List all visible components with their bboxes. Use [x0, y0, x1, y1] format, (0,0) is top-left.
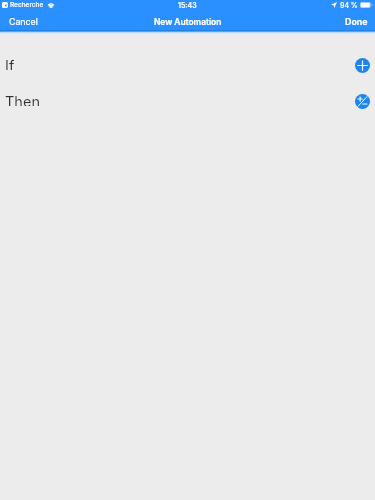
staticText: Done	[345, 16, 368, 27]
button[interactable]: Done	[336, 14, 375, 29]
button[interactable]: Add action	[355, 94, 370, 109]
staticText: If	[5, 57, 15, 70]
other: Wi-Fi	[47, 2, 55, 8]
staticText: 94 %	[340, 1, 358, 9]
staticText: Cancel	[9, 16, 38, 27]
staticText: New Automation	[154, 17, 222, 27]
staticText: Then	[5, 93, 40, 106]
button[interactable]: Add condition	[355, 58, 370, 73]
other: Location services active	[331, 2, 337, 8]
staticText: 15:43	[178, 1, 197, 9]
other: Battery 94 percent	[360, 2, 373, 8]
staticText: Recherche	[10, 1, 44, 9]
button[interactable]: Cancel	[0, 14, 47, 29]
button[interactable]: Back to Recherche	[2, 2, 8, 8]
